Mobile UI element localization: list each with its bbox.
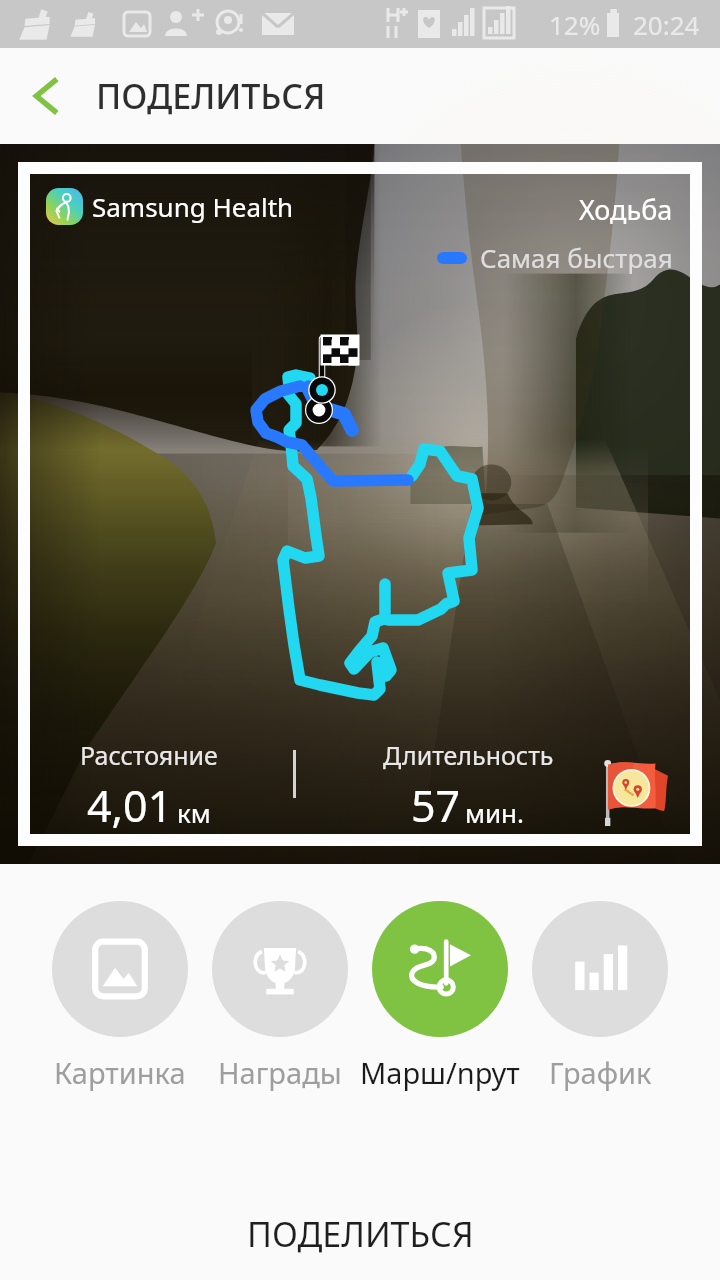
staticText: Ходьба (579, 191, 673, 228)
staticText: Samsung Health (92, 189, 294, 224)
staticText: мин. (465, 795, 525, 830)
button[interactable]: Марш/nрут (340, 901, 540, 1101)
staticText: 12% (549, 7, 601, 42)
staticText: 57 (411, 776, 461, 834)
staticText: Картинка (54, 1053, 186, 1092)
button[interactable]: Back (16, 66, 76, 126)
staticText: км (177, 795, 211, 830)
button[interactable]: Награды (180, 901, 380, 1101)
staticText: 4,01 (87, 776, 173, 834)
staticText: Расстояние (80, 738, 218, 772)
staticText: Награды (218, 1053, 342, 1092)
staticText: ПОДЕЛИТЬСЯ (96, 73, 326, 119)
staticText: 20:24 (633, 7, 700, 42)
staticText: График (549, 1053, 652, 1092)
button[interactable]: Картинка (20, 901, 220, 1101)
button[interactable]: ПОДЕЛИТЬСЯ (0, 1188, 720, 1280)
staticText: ПОДЕЛИТЬСЯ (247, 1211, 474, 1257)
staticText: Марш/nрут (360, 1053, 520, 1092)
staticText: Самая быстрая (480, 240, 673, 275)
button[interactable]: График (500, 901, 700, 1101)
staticText: Длительность (383, 738, 554, 772)
